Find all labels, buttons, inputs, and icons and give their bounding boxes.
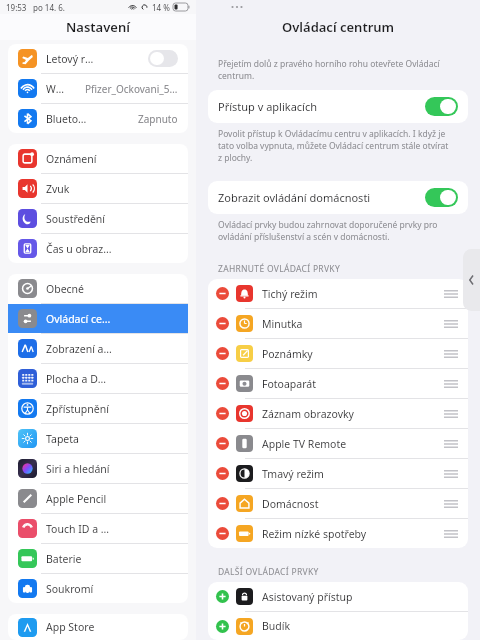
staticText: Budík bbox=[262, 619, 291, 633]
button[interactable]: Multitasking options bbox=[230, 2, 244, 12]
staticText: Fotoaparát bbox=[262, 377, 316, 391]
button[interactable]: Open Slide Over bbox=[463, 249, 480, 311]
staticText: Letový režim bbox=[46, 52, 97, 66]
button[interactable]: Remove Apple TV Remote bbox=[208, 429, 468, 458]
button[interactable]: Zobrazit ovládání domácnosti bbox=[208, 181, 468, 214]
button[interactable]: Plocha a Dock bbox=[8, 364, 188, 393]
button[interactable]: Soustředění bbox=[8, 204, 188, 233]
staticText: Touch ID a kódový zámek bbox=[46, 522, 112, 536]
staticText: Domácnost bbox=[262, 497, 319, 511]
button[interactable]: Remove Poznámky bbox=[208, 339, 468, 368]
staticText: Přístup v aplikacích bbox=[218, 99, 317, 114]
staticText: Apple TV Remote bbox=[262, 437, 347, 451]
staticText: Zapnuto bbox=[138, 112, 178, 126]
staticText: Baterie bbox=[46, 552, 82, 566]
other: Remove Fotoaparát bbox=[216, 377, 229, 390]
button[interactable]: Bluetooth bbox=[8, 104, 188, 133]
other: Remove Tmavý režim bbox=[216, 467, 229, 480]
other: Remove Poznámky bbox=[216, 347, 229, 360]
staticText: Povolit přístup k Ovládacímu centru v ap… bbox=[218, 128, 450, 164]
other: Remove Minutka bbox=[216, 317, 229, 330]
button[interactable]: Remove Domácnost bbox=[208, 489, 468, 518]
staticText: Zvuk bbox=[46, 182, 70, 196]
staticText: Nastavení bbox=[66, 18, 130, 36]
button[interactable]: Remove Tmavý režim bbox=[208, 459, 468, 488]
button[interactable]: Letový režim bbox=[8, 44, 188, 73]
other: Remove Domácnost bbox=[216, 497, 229, 510]
button[interactable]: Add Budík bbox=[208, 612, 468, 640]
button[interactable]: Remove Záznam obrazovky bbox=[208, 399, 468, 428]
button[interactable]: Remove Fotoaparát bbox=[208, 369, 468, 398]
button[interactable]: Přístup v aplikacích bbox=[208, 90, 468, 123]
staticText: Soustředění bbox=[46, 212, 106, 226]
button[interactable]: Zpřístupnění bbox=[8, 394, 188, 423]
staticText: Zobrazení a jas bbox=[46, 342, 112, 356]
button[interactable]: Ovládací centrum bbox=[8, 304, 188, 333]
staticText: Bluetooth bbox=[46, 112, 92, 126]
staticText: Záznam obrazovky bbox=[262, 407, 354, 421]
button[interactable]: Add Asistovaný přístup bbox=[208, 582, 468, 611]
staticText: Poznámky bbox=[262, 347, 313, 361]
staticText: 19:53 bbox=[6, 2, 27, 13]
staticText: 14 % bbox=[152, 2, 170, 13]
button[interactable]: Siri a hledání bbox=[8, 454, 188, 483]
button[interactable]: Apple Pencil bbox=[8, 484, 188, 513]
staticText: Zobrazit ovládání domácnosti bbox=[218, 190, 371, 205]
staticText: DALŠÍ OVLÁDACÍ PRVKY bbox=[218, 566, 319, 578]
staticText: Pfizer_Ockovani_5… bbox=[85, 82, 178, 96]
staticText: Soukromí bbox=[46, 582, 94, 596]
other: Remove Apple TV Remote bbox=[216, 437, 229, 450]
staticText: Čas u obrazovky bbox=[46, 242, 112, 256]
staticText: Tapeta bbox=[46, 432, 79, 446]
button[interactable]: Zobrazení a jas bbox=[8, 334, 188, 363]
staticText: Siri a hledání bbox=[46, 462, 110, 476]
staticText: Režim nízké spotřeby bbox=[262, 527, 367, 541]
staticText: po 14. 6. bbox=[33, 2, 65, 13]
button[interactable]: Remove Režim nízké spotřeby bbox=[208, 519, 468, 548]
other: Add Asistovaný přístup bbox=[216, 590, 229, 603]
staticText: Tmavý režim bbox=[262, 467, 324, 481]
button[interactable]: Remove Tichý režim bbox=[208, 279, 468, 308]
staticText: Minutka bbox=[262, 317, 303, 331]
button[interactable]: Remove Minutka bbox=[208, 309, 468, 338]
other: Remove Režim nízké spotřeby bbox=[216, 527, 229, 540]
button[interactable]: Baterie bbox=[8, 544, 188, 573]
staticText: Přejetím dolů z pravého horního rohu ote… bbox=[218, 58, 450, 82]
staticText: App Store bbox=[46, 620, 95, 634]
staticText: Ovládací centrum bbox=[46, 312, 112, 326]
button[interactable]: Wi-Fi bbox=[8, 74, 188, 103]
button[interactable]: Čas u obrazovky bbox=[8, 234, 188, 263]
staticText: Plocha a Dock bbox=[46, 372, 112, 386]
staticText: ZAHRNUTÉ OVLÁDACÍ PRVKY bbox=[218, 263, 341, 275]
button[interactable]: Tapeta bbox=[8, 424, 188, 453]
staticText: Ovládací prvky budou zahrnovat doporučen… bbox=[218, 219, 450, 243]
other: Remove Tichý režim bbox=[216, 287, 229, 300]
staticText: Oznámení bbox=[46, 152, 97, 166]
button[interactable]: Obecné bbox=[8, 274, 188, 303]
staticText: Apple Pencil bbox=[46, 492, 107, 506]
staticText: Tichý režim bbox=[262, 287, 318, 301]
staticText: Ovládací centrum bbox=[282, 18, 395, 36]
other: Add Budík bbox=[216, 620, 229, 633]
button[interactable]: Airplane mode toggle bbox=[148, 50, 178, 67]
other: Remove Záznam obrazovky bbox=[216, 407, 229, 420]
staticText: Asistovaný přístup bbox=[262, 590, 353, 604]
staticText: Wi-Fi bbox=[46, 82, 65, 96]
button[interactable]: Touch ID a kódový zámek bbox=[8, 514, 188, 543]
button[interactable]: App Store bbox=[8, 614, 188, 640]
button[interactable]: Soukromí bbox=[8, 574, 188, 603]
button[interactable]: Zvuk bbox=[8, 174, 188, 203]
staticText: Obecné bbox=[46, 282, 85, 296]
button[interactable]: Oznámení bbox=[8, 144, 188, 173]
staticText: Zpřístupnění bbox=[46, 402, 109, 416]
